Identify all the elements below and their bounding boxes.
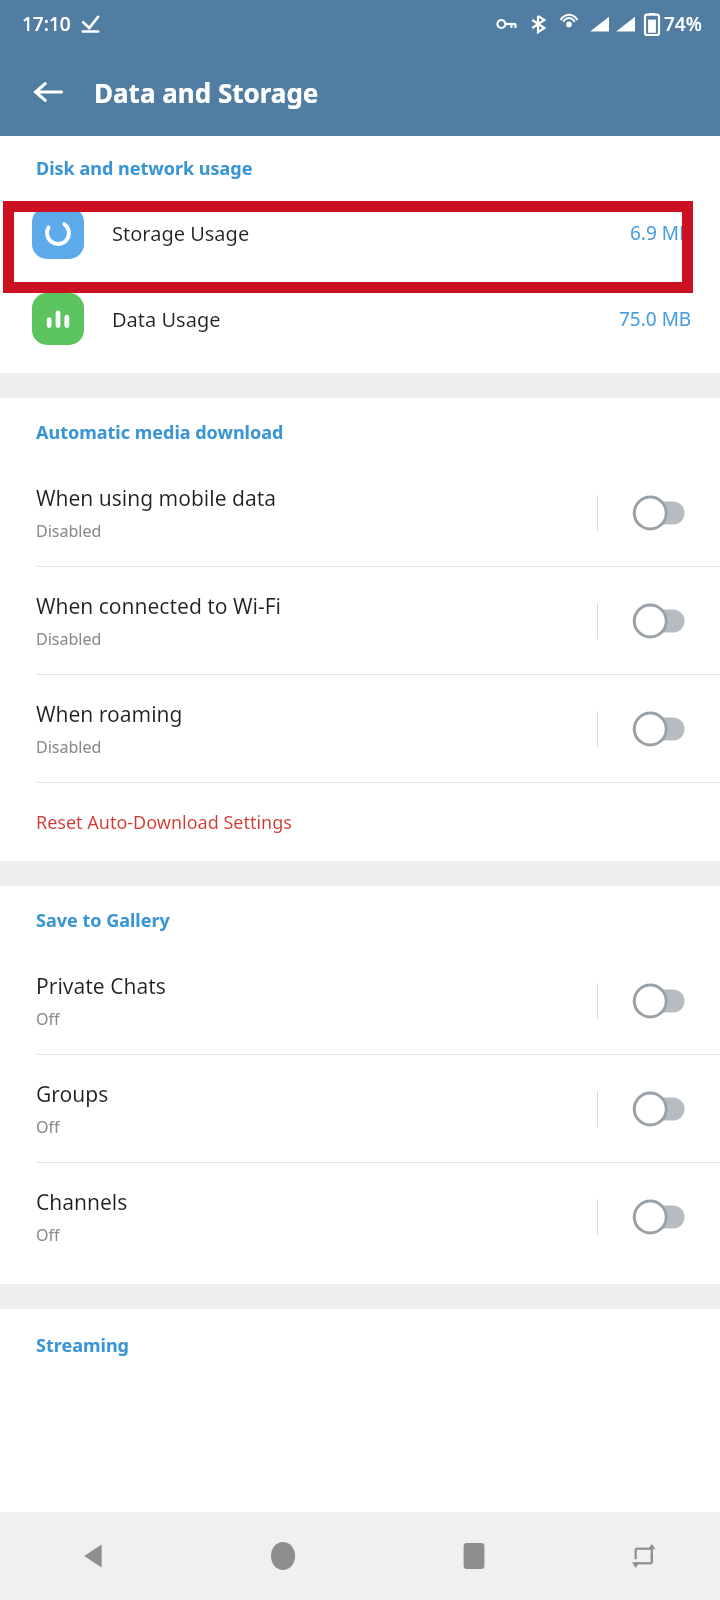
staticText: Reset Auto-Download Settings (36, 810, 292, 835)
button[interactable]: Channels (0, 1163, 720, 1270)
staticText: Data Usage (112, 306, 619, 333)
staticText: Disk and network usage (36, 156, 253, 181)
staticText: 74% (664, 11, 702, 37)
staticText: Disabled (36, 628, 102, 650)
staticText: When using mobile data (36, 484, 277, 513)
button[interactable]: Toggle, off (630, 601, 692, 641)
button[interactable]: When roaming (0, 675, 720, 782)
staticText: When roaming (36, 700, 183, 729)
staticText: Save to Gallery (36, 908, 170, 933)
button[interactable]: Toggle, off (630, 709, 692, 749)
staticText: Off (36, 1008, 60, 1030)
button[interactable]: Toggle, off (630, 981, 692, 1021)
staticText: Disabled (36, 520, 102, 542)
staticText: Storage Usage (112, 220, 630, 247)
staticText: Data and Storage (94, 75, 319, 110)
staticText: Channels (36, 1188, 128, 1217)
button[interactable]: Groups (0, 1055, 720, 1162)
button[interactable]: Recent apps (379, 1512, 568, 1600)
button[interactable]: Storage Usage (0, 190, 720, 276)
button[interactable]: Reset Auto-Download Settings (0, 783, 720, 861)
staticText: Streaming (36, 1333, 129, 1358)
button[interactable]: Back (0, 1512, 190, 1600)
staticText: 17:10 (22, 11, 71, 37)
button[interactable]: Back (20, 64, 76, 120)
button[interactable]: Toggle, off (630, 1089, 692, 1129)
button[interactable]: Toggle, off (630, 493, 692, 533)
staticText: 75.0 MB (619, 306, 692, 332)
staticText: Private Chats (36, 972, 166, 1001)
staticText: Disabled (36, 736, 102, 758)
button[interactable]: When connected to Wi-Fi (0, 567, 720, 674)
button[interactable]: When using mobile data (0, 459, 720, 566)
staticText: Automatic media download (36, 420, 284, 445)
button[interactable]: Home (190, 1512, 379, 1600)
button[interactable]: Data Usage (0, 276, 720, 362)
staticText: Off (36, 1116, 60, 1138)
button[interactable]: Private Chats (0, 947, 720, 1054)
button[interactable]: Toggle, off (630, 1197, 692, 1237)
staticText: When connected to Wi-Fi (36, 592, 282, 621)
button[interactable]: Rotate screen (568, 1512, 720, 1600)
staticText: Off (36, 1224, 60, 1246)
staticText: 6.9 MB (630, 220, 692, 246)
staticText: Groups (36, 1080, 109, 1109)
